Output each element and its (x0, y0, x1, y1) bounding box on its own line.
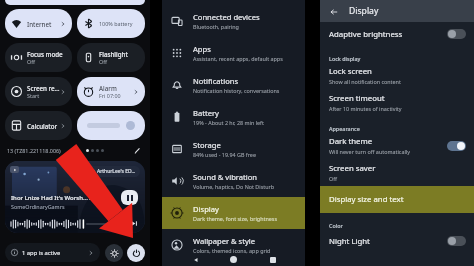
button[interactable]: Battery (162, 101, 305, 133)
staticText: Display (193, 204, 219, 214)
staticText: Volume, haptics, Do Not Disturb (193, 183, 275, 190)
staticText: ArthurLee's ED... (97, 168, 136, 175)
staticText: Adaptive brightness (329, 29, 403, 40)
staticText: Apps (193, 44, 211, 54)
staticText: After 10 minutes of inactivity (329, 105, 402, 112)
button[interactable]: Apps (162, 37, 305, 69)
button[interactable]: Display (162, 197, 305, 229)
staticText: Focus mode (27, 50, 63, 58)
staticText: Storage (193, 140, 221, 150)
button[interactable]: Settings (105, 244, 123, 262)
button[interactable]: Storage (162, 133, 305, 165)
button[interactable]: Internet (5, 9, 72, 38)
staticText: Display (349, 5, 379, 17)
button[interactable]: ArthurLee's ED... (5, 161, 145, 233)
staticText: Alarm (99, 84, 117, 92)
staticText: Ihor Lnize Had It's Worsh... Aver... (11, 194, 107, 202)
staticText: Dark theme, font size, brightness (193, 215, 277, 222)
button[interactable]: Dark theme (320, 132, 474, 159)
button[interactable]: Recents (268, 255, 277, 264)
staticText: 1 app is active (22, 249, 61, 257)
button[interactable]: Flashlight (77, 43, 145, 72)
staticText: Notification history, conversations (193, 87, 280, 94)
staticText: Night Light (329, 236, 370, 247)
button[interactable]: Edit tiles (132, 145, 143, 156)
button[interactable]: Screen timeout (320, 89, 474, 116)
button[interactable]: Sound & vibration (162, 165, 305, 197)
button[interactable]: Connected devices (162, 5, 305, 37)
staticText: Color (329, 222, 343, 229)
staticText: 84% used - 19.94 GB free (193, 151, 256, 158)
button[interactable]: Next track (130, 219, 139, 228)
staticText: Assistant, recent apps, default apps (193, 55, 283, 62)
button[interactable]: Night Light (320, 229, 474, 253)
button[interactable]: Back (327, 5, 340, 18)
staticText: Start (27, 92, 40, 99)
staticText: Calculator (27, 122, 58, 130)
button[interactable] (77, 111, 145, 140)
button[interactable]: Wallpaper & style (162, 229, 305, 261)
button[interactable]: Night Light (447, 236, 466, 246)
staticText: Internet (27, 20, 52, 28)
staticText: Lock display (329, 55, 361, 62)
staticText: Off (329, 175, 337, 182)
staticText: Connected devices (193, 12, 260, 22)
staticText: Flashlight (99, 50, 128, 58)
button[interactable]: Dark theme (447, 141, 466, 151)
staticText: 13 (TZ81.221118.006) (7, 147, 61, 154)
staticText: Screen record (27, 84, 60, 92)
staticText: Battery (193, 108, 219, 118)
button[interactable]: Notifications (162, 69, 305, 101)
staticText: 100% battery (99, 20, 133, 27)
button[interactable]: 1 app is active (5, 243, 100, 262)
button[interactable]: Focus mode (5, 43, 72, 72)
staticText: Show all notification content (329, 78, 401, 85)
staticText: Wallpaper & style (193, 236, 256, 246)
button[interactable]: Screen saver (320, 159, 474, 186)
button[interactable]: Calculator (5, 111, 72, 140)
staticText: Screen timeout (329, 93, 385, 104)
staticText: Off (27, 58, 35, 65)
staticText: Notifications (193, 76, 239, 86)
staticText: Lock screen (329, 66, 372, 77)
button[interactable]: Adaptive brightness (320, 22, 474, 46)
staticText: Colors, themed icons, app grid (193, 247, 271, 254)
staticText: Dark theme (329, 136, 373, 147)
button[interactable]: Screen record (5, 77, 72, 106)
button[interactable]: Back (191, 255, 200, 264)
staticText: Will never turn off automatically (329, 148, 410, 155)
staticText: SomeOrdinaryGamrs (11, 203, 65, 210)
staticText: Display size and text (329, 194, 404, 205)
button[interactable]: ArthurLee's ED... (86, 166, 140, 177)
button[interactable]: Alarm (77, 77, 145, 106)
button[interactable]: Pause (121, 190, 138, 205)
staticText: Bluetooth, pairing (193, 23, 239, 30)
staticText: Fri 07:00 (99, 92, 121, 99)
button[interactable]: Lock screen (320, 62, 474, 89)
button[interactable]: Home (228, 254, 239, 265)
staticText: 19% - About 2 hr, 28 min left (193, 119, 264, 126)
button[interactable]: 100% battery (77, 9, 145, 38)
button[interactable]: Power (127, 244, 145, 262)
staticText: Screen saver (329, 163, 376, 174)
button[interactable]: Display size and text (320, 186, 474, 213)
button[interactable]: Adaptive brightness (447, 29, 466, 39)
staticText: Off (99, 58, 107, 65)
staticText: Appearance (329, 125, 360, 132)
staticText: Sound & vibration (193, 172, 258, 182)
